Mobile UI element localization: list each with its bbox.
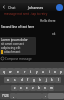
- button[interactable]: b: [36, 85, 42, 91]
- button[interactable]: w: [7, 68, 14, 75]
- button[interactable]: p: [58, 68, 64, 75]
- staticText: r: [24, 70, 26, 74]
- staticText: g: [33, 78, 35, 82]
- button[interactable]: e: [14, 68, 21, 75]
- staticText: t: [30, 70, 32, 74]
- staticText: h: [39, 78, 41, 82]
- button[interactable]: h: [37, 77, 43, 83]
- staticText: m: [50, 86, 53, 90]
- staticText: Second line of text here: [1, 25, 35, 29]
- button[interactable]: r: [21, 68, 28, 75]
- staticText: n: [44, 86, 46, 90]
- button[interactable]: n: [42, 85, 48, 91]
- staticText: sit amet consect: [1, 42, 24, 46]
- button[interactable]: z: [11, 85, 18, 91]
- staticText: Lorem ipsum dolor: [1, 38, 28, 42]
- staticText: v: [32, 86, 34, 90]
- button[interactable]: ?123: [0, 93, 10, 99]
- staticText: a: [7, 78, 9, 82]
- button[interactable]: l: [55, 77, 61, 83]
- staticText: u: [42, 70, 44, 74]
- button[interactable]: v: [30, 85, 36, 91]
- button[interactable]: s: [11, 77, 18, 83]
- staticText: x: [20, 86, 22, 90]
- staticText: q: [3, 70, 5, 74]
- staticText: o: [54, 70, 56, 74]
- staticText: attachment: [4, 50, 21, 54]
- button[interactable]: k: [49, 77, 55, 83]
- button[interactable]: t: [28, 68, 34, 75]
- staticText: Compose message: [5, 57, 32, 61]
- staticText: ?123: [2, 94, 9, 98]
- button[interactable]: g: [31, 77, 37, 83]
- button[interactable]: c: [24, 85, 30, 91]
- staticText: ok: [52, 32, 56, 36]
- staticText: l: [58, 78, 59, 82]
- staticText: Chat: [8, 5, 16, 10]
- staticText: b: [38, 86, 40, 90]
- button[interactable]: f: [25, 77, 31, 83]
- staticText: e: [17, 70, 19, 74]
- staticText: y: [36, 70, 38, 74]
- staticText: z: [14, 86, 16, 90]
- button[interactable]: ,: [10, 93, 16, 99]
- button[interactable]: d: [18, 77, 25, 83]
- staticText: j: [46, 78, 47, 82]
- button[interactable]: x: [18, 85, 24, 91]
- staticText: message not sent - tap to retry: [4, 12, 48, 16]
- button[interactable]: u: [40, 68, 46, 75]
- staticText: d: [21, 78, 23, 82]
- button[interactable]: y: [34, 68, 40, 75]
- button[interactable]: m: [48, 85, 54, 91]
- staticText: .: [45, 94, 46, 98]
- button[interactable]: Compose message: [0, 55, 64, 62]
- button[interactable]: .: [42, 93, 48, 99]
- button[interactable]: Back: [0, 3, 8, 11]
- button[interactable]: q: [0, 68, 7, 75]
- button[interactable]: i: [46, 68, 52, 75]
- staticText: Hello there: [40, 19, 56, 23]
- staticText: c: [26, 86, 28, 90]
- button[interactable]: a: [4, 77, 11, 83]
- staticText: i: [49, 70, 50, 74]
- staticText: k: [51, 78, 53, 82]
- staticText: s: [14, 78, 16, 82]
- staticText: w: [9, 70, 12, 74]
- button[interactable]: Profile: [56, 4, 63, 11]
- staticText: p: [60, 70, 62, 74]
- staticText: Johannes: [28, 5, 44, 10]
- staticText: ,: [13, 94, 14, 98]
- staticText: f: [27, 78, 29, 82]
- button[interactable]: o: [52, 68, 58, 75]
- staticText: adipiscing elit: [1, 46, 21, 50]
- button[interactable]: j: [43, 77, 49, 83]
